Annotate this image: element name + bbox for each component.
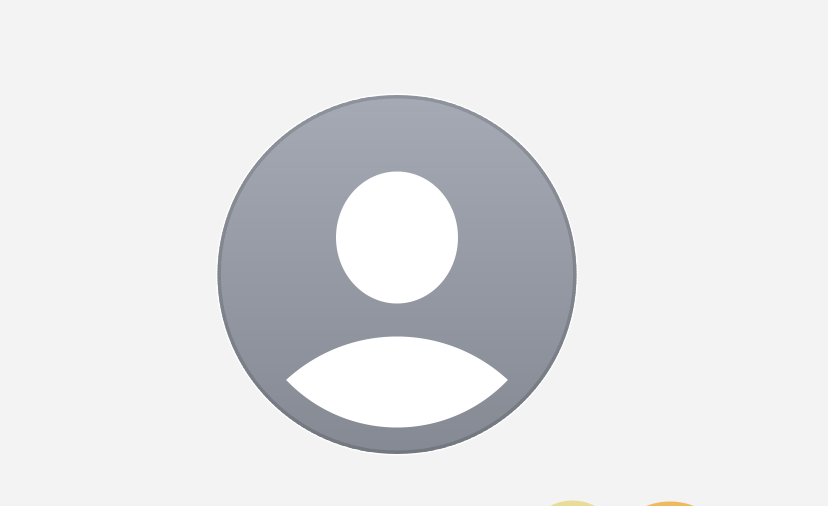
button[interactable]: Profile photo bbox=[217, 95, 576, 454]
button[interactable]: Smiley reaction bbox=[524, 500, 621, 506]
button[interactable]: Celebration reaction bbox=[604, 501, 735, 506]
